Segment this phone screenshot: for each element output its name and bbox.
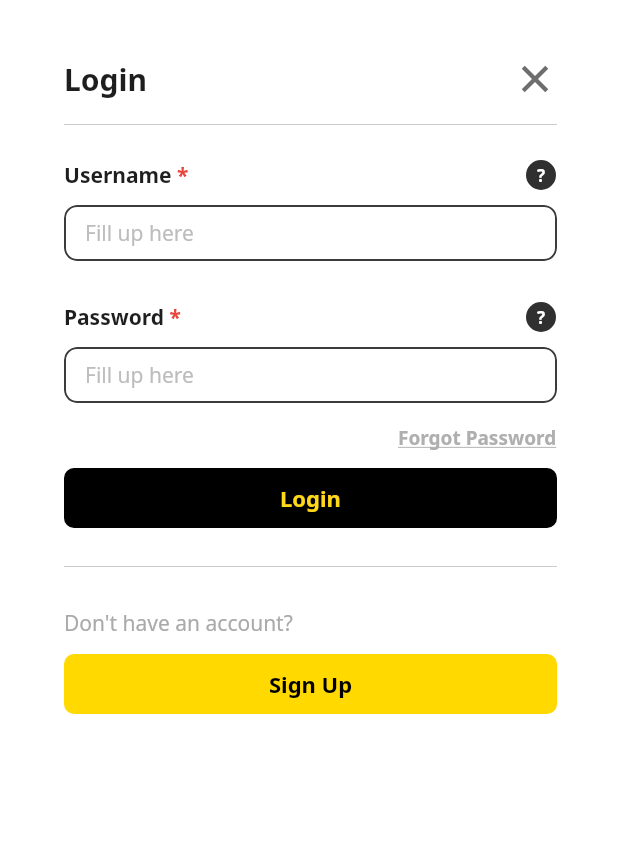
button[interactable]: Login <box>64 468 557 528</box>
staticText: Sign Up <box>269 669 353 699</box>
staticText: Password * <box>64 303 181 332</box>
staticText: Login <box>64 59 147 100</box>
button[interactable]: Fill up here <box>64 347 557 403</box>
staticText: Don't have an account? <box>64 609 293 638</box>
staticText: Fill up here <box>85 361 194 390</box>
staticText: Forgot Password <box>398 425 557 451</box>
staticText: Fill up here <box>85 219 194 248</box>
staticText: Login <box>280 483 341 513</box>
staticText: ? <box>537 306 546 329</box>
button[interactable]: Close <box>513 57 557 101</box>
button[interactable]: Sign Up <box>64 654 557 714</box>
button[interactable]: Forgot Password <box>398 425 557 451</box>
button[interactable]: Fill up here <box>64 205 557 261</box>
button[interactable]: Help for Username <box>525 159 557 191</box>
staticText: ? <box>537 164 546 187</box>
button[interactable]: Help for Password <box>525 301 557 333</box>
staticText: Username * <box>64 161 189 190</box>
